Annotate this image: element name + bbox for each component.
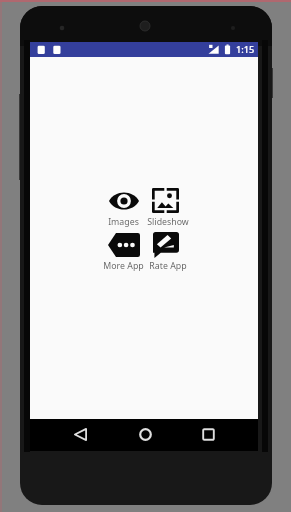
staticText: More App xyxy=(103,260,144,272)
button[interactable] xyxy=(143,229,189,265)
staticText: Rate App xyxy=(149,260,187,272)
staticText: 1:15 xyxy=(236,43,255,56)
button[interactable] xyxy=(101,230,147,266)
button[interactable]: Back xyxy=(64,419,96,451)
button[interactable]: Home xyxy=(129,419,161,451)
staticText: Images xyxy=(108,216,139,228)
button[interactable] xyxy=(101,188,147,224)
button[interactable] xyxy=(143,185,189,221)
button[interactable]: Recents xyxy=(192,419,224,451)
staticText: Slideshow xyxy=(147,216,189,228)
